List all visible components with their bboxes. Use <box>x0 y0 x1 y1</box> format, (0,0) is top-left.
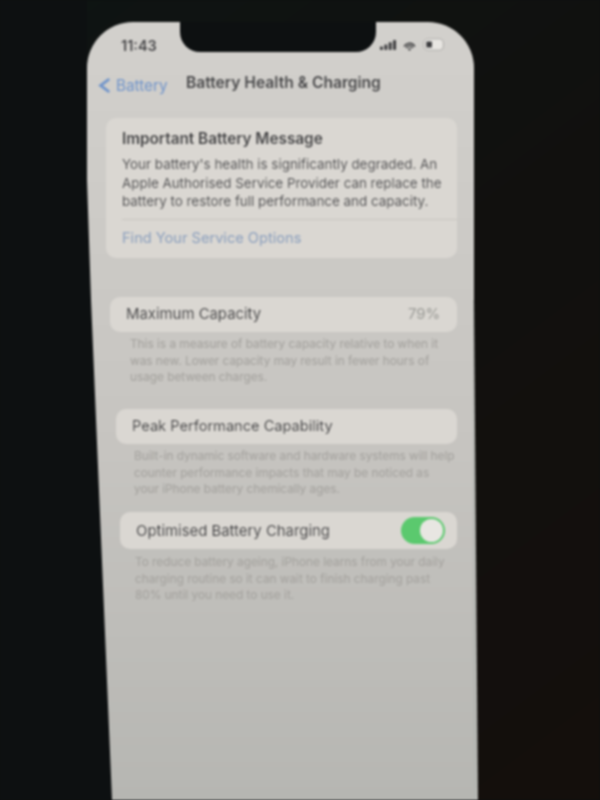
staticText: Find Your Service Options <box>122 229 302 247</box>
button[interactable]: Find Your Service Options <box>106 220 457 258</box>
staticText: Battery <box>116 76 168 95</box>
staticText: This is a measure of battery capacity re… <box>130 337 448 384</box>
button[interactable]: Battery <box>91 72 176 99</box>
staticText: Built-in dynamic software and hardware s… <box>134 449 460 496</box>
staticText: Important Battery Message <box>122 129 323 148</box>
staticText: Peak Performance Capability <box>132 417 333 435</box>
staticText: To reduce battery ageing, iPhone learns … <box>135 555 453 602</box>
button[interactable]: Optimised Battery Charging <box>120 512 457 549</box>
button[interactable]: Optimised Battery Charging toggle <box>401 517 445 544</box>
button[interactable]: Peak Performance Capability <box>116 409 457 444</box>
staticText: Battery Health & Charging <box>186 73 381 92</box>
button[interactable]: Maximum Capacity <box>110 297 457 332</box>
staticText: Your battery's health is significantly d… <box>122 156 450 209</box>
staticText: 11:43 <box>121 37 157 55</box>
staticText: Maximum Capacity <box>126 305 262 323</box>
staticText: Optimised Battery Charging <box>136 522 330 540</box>
staticText: 79% <box>408 305 441 323</box>
